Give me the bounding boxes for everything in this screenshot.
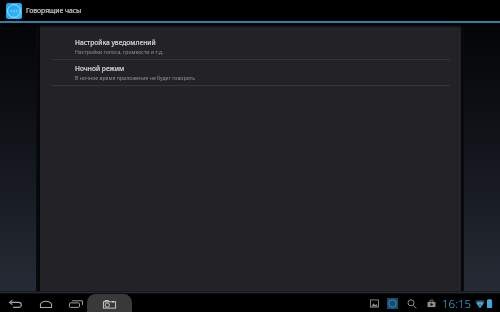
staticText: Ночной режим [75,64,125,73]
button[interactable]: Home [36,295,55,312]
button[interactable]: Recent apps [66,295,85,312]
button[interactable]: Ночной режим [40,60,461,85]
button[interactable]: Back [6,295,25,312]
staticText: Настройка уведомлений [75,38,156,47]
staticText: Говорящие часы [26,6,82,15]
button[interactable]: Talking clock notification [383,297,402,310]
button[interactable]: Screenshot [87,294,132,312]
staticText: В ночное время приложения не будет говор… [75,74,196,81]
button[interactable]: Настройка уведомлений [40,34,461,59]
button[interactable]: Search [402,297,421,310]
button[interactable]: Screenshot captured [365,297,384,310]
button[interactable]: Play Store [422,297,440,310]
staticText: 16:15 [442,296,472,310]
staticText: Настройки голоса, громкости и т.д. [75,48,164,55]
